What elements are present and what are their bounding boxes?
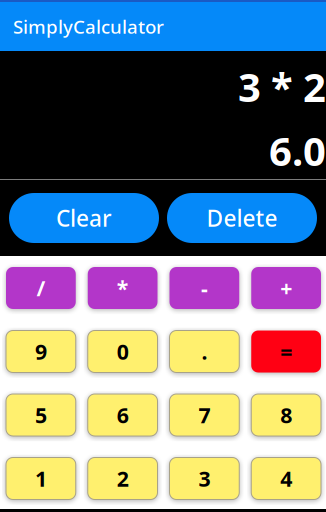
staticText: 7 [198, 401, 210, 429]
button[interactable]: . [169, 330, 239, 372]
button[interactable]: 9 [6, 330, 76, 372]
staticText: 1 [35, 464, 47, 493]
button[interactable]: 4 [251, 457, 321, 499]
staticText: Delete [206, 203, 277, 233]
button[interactable]: - [169, 267, 239, 309]
button[interactable]: 7 [169, 394, 239, 436]
button[interactable]: + [251, 267, 321, 309]
button[interactable]: 2 [88, 457, 158, 499]
button[interactable]: = [251, 330, 321, 372]
staticText: Clear [56, 203, 112, 233]
staticText: 3 [198, 464, 210, 493]
staticText: 4 [280, 464, 292, 493]
staticText: 6 [117, 401, 129, 429]
staticText: 9 [35, 337, 47, 366]
button[interactable]: 5 [6, 394, 76, 436]
button[interactable]: 8 [251, 394, 321, 436]
button[interactable]: Delete [167, 193, 317, 243]
staticText: = [280, 337, 292, 366]
button[interactable]: 6 [88, 394, 158, 436]
button[interactable]: Clear [9, 193, 159, 243]
staticText: + [280, 274, 292, 302]
button[interactable]: * [88, 267, 158, 309]
staticText: . [201, 337, 207, 366]
staticText: 8 [280, 401, 292, 429]
staticText: 6.0 [269, 124, 326, 177]
button[interactable]: 1 [6, 457, 76, 499]
button[interactable]: 3 [169, 457, 239, 499]
staticText: 3 * 2 [238, 60, 326, 113]
staticText: 5 [35, 401, 47, 429]
staticText: 0 [117, 337, 129, 366]
staticText: / [36, 274, 45, 302]
staticText: SimplyCalculator [13, 14, 164, 39]
staticText: * [117, 274, 129, 302]
staticText: 2 [117, 464, 129, 493]
button[interactable]: / [6, 267, 76, 309]
button[interactable]: 0 [88, 330, 158, 372]
staticText: - [201, 274, 208, 302]
